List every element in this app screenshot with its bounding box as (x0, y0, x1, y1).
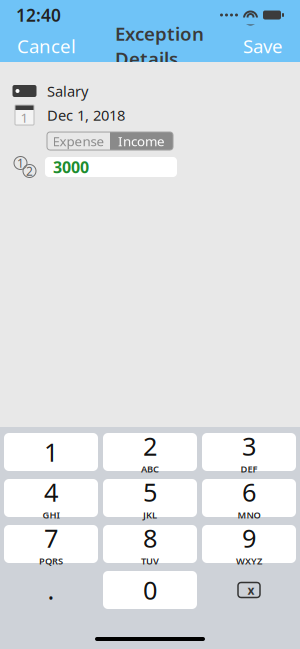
staticText: Expense (52, 132, 104, 150)
button[interactable]: Cancel (5, 26, 88, 66)
staticText: . (47, 573, 54, 607)
button[interactable]: 1 (4, 433, 98, 471)
staticText: 5 (143, 475, 157, 509)
staticText: 2 (143, 429, 157, 463)
button[interactable]: 8 (103, 525, 197, 563)
staticText: 6 (242, 475, 256, 509)
button[interactable]: 3 (202, 433, 296, 471)
button[interactable]: Income (110, 132, 173, 150)
staticText: WXYZ (236, 555, 262, 567)
staticText: DEF (240, 463, 257, 475)
staticText: Cancel (17, 34, 76, 58)
staticText: 8 (143, 521, 157, 555)
button[interactable]: Expense (47, 132, 110, 150)
staticText: JKL (143, 509, 157, 521)
staticText: x (247, 582, 254, 598)
staticText: MNO (237, 509, 260, 521)
staticText: 0 (143, 573, 157, 607)
staticText: 1 (17, 155, 24, 171)
staticText: 4 (44, 475, 58, 509)
staticText: PQRS (39, 555, 63, 567)
button[interactable]: 6 (202, 479, 296, 517)
button[interactable]: Delete (202, 571, 296, 609)
staticText: GHI (42, 509, 59, 521)
staticText: Income (118, 132, 165, 150)
staticText: 12:40 (16, 3, 61, 26)
button[interactable]: 5 (103, 479, 197, 517)
staticText: 1 (44, 435, 58, 469)
staticText: 3 (242, 429, 256, 463)
staticText: 3000 (53, 156, 89, 178)
staticText: Exception Details (115, 21, 204, 71)
button[interactable]: . (4, 571, 98, 609)
button[interactable]: 7 (4, 525, 98, 563)
staticText: Save (243, 34, 283, 58)
staticText: Dec 1, 2018 (47, 105, 125, 125)
staticText: 9 (242, 521, 256, 555)
button[interactable]: Save (231, 26, 295, 66)
staticText: 7 (44, 521, 58, 555)
staticText: 2 (26, 163, 33, 179)
button[interactable]: 2 (103, 433, 197, 471)
staticText: Salary (47, 81, 88, 101)
staticText: TUV (141, 555, 159, 567)
staticText: 1 (20, 109, 28, 126)
staticText: ABC (141, 463, 159, 475)
button[interactable]: 0 (103, 571, 197, 609)
button[interactable]: 4 (4, 479, 98, 517)
button[interactable]: 9 (202, 525, 296, 563)
